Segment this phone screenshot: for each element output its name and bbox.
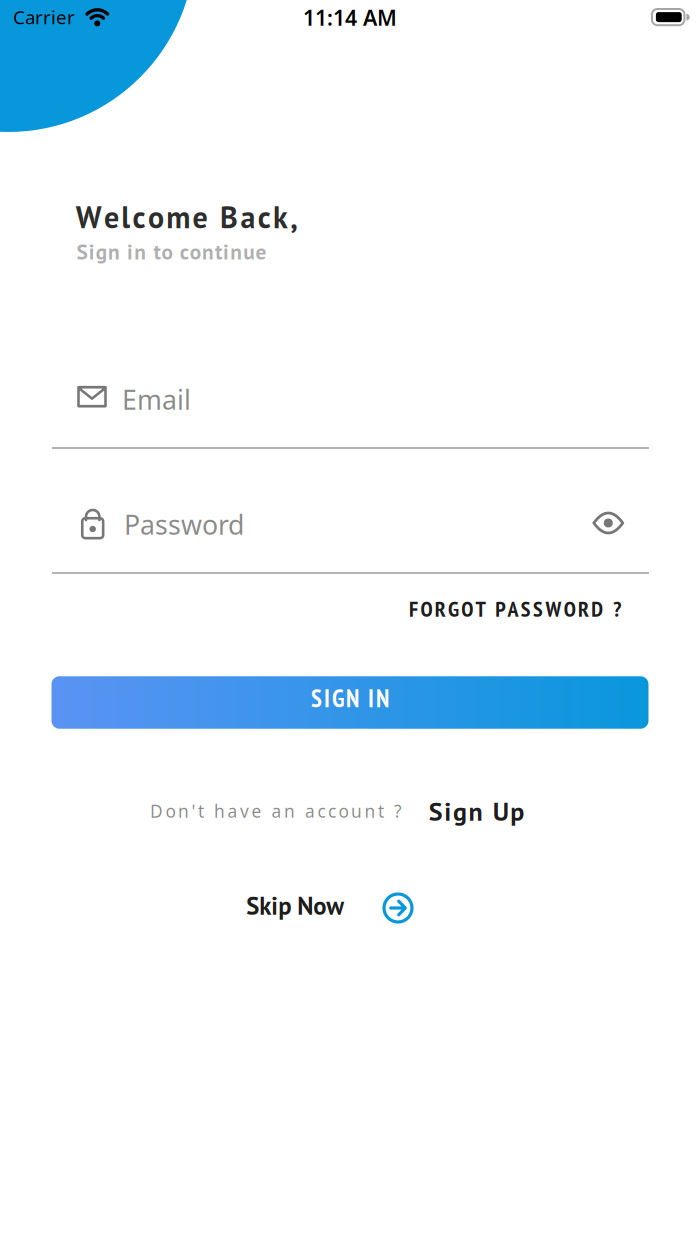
staticText: o: [190, 238, 201, 265]
staticText: R: [578, 594, 589, 623]
staticText: S: [311, 682, 322, 714]
staticText: p: [510, 794, 524, 828]
button[interactable]: S: [51, 676, 648, 729]
staticText: S: [77, 238, 88, 265]
staticText: Carrier: [13, 5, 75, 29]
staticText: n: [178, 799, 189, 822]
staticText: Email: [122, 382, 191, 417]
staticText: c: [328, 799, 336, 822]
staticText: O: [564, 594, 576, 623]
button[interactable]: F: [409, 594, 621, 623]
staticText: t: [215, 238, 222, 265]
staticText: e: [255, 238, 266, 265]
staticText: O: [461, 594, 473, 623]
staticText: t: [378, 799, 384, 822]
staticText: l: [121, 198, 130, 236]
staticText: i: [89, 238, 95, 265]
staticText: T: [476, 594, 486, 623]
staticText: R: [435, 594, 446, 623]
staticText: A: [507, 594, 518, 623]
staticText: e: [192, 198, 207, 236]
button[interactable]: Password: [52, 484, 572, 564]
button[interactable]: Email: [52, 358, 649, 438]
staticText: u: [351, 799, 362, 822]
staticText: t: [198, 799, 204, 822]
staticText: I: [368, 682, 374, 714]
staticText: N: [346, 682, 359, 714]
staticText: ?: [613, 594, 621, 623]
staticText: i: [127, 238, 133, 265]
staticText: W: [545, 594, 561, 623]
staticText: n: [202, 238, 214, 265]
staticText: o: [161, 238, 172, 265]
button[interactable]: Skip Now: [246, 892, 414, 924]
staticText: ,: [290, 198, 298, 236]
staticText: S: [429, 794, 443, 828]
staticText: O: [420, 594, 432, 623]
staticText: G: [448, 594, 459, 623]
staticText: Skip Now: [246, 889, 344, 921]
staticText: n: [108, 238, 120, 265]
staticText: h: [214, 799, 225, 822]
staticText: 11:14 AM: [303, 3, 397, 32]
staticText: t: [153, 238, 160, 265]
staticText: G: [332, 682, 344, 714]
staticText: B: [220, 198, 238, 236]
staticText: N: [376, 682, 389, 714]
staticText: c: [180, 238, 189, 265]
staticText: W: [76, 198, 102, 236]
staticText: F: [409, 594, 418, 623]
staticText: o: [338, 799, 348, 822]
staticText: I: [324, 682, 330, 714]
staticText: g: [96, 238, 107, 265]
button[interactable]: Show password: [591, 510, 625, 536]
staticText: Password: [124, 507, 244, 542]
staticText: n: [284, 799, 295, 822]
staticText: k: [273, 198, 288, 236]
staticText: U: [493, 794, 509, 828]
staticText: n: [468, 794, 482, 828]
staticText: D: [591, 594, 603, 623]
staticText: v: [240, 799, 249, 822]
staticText: c: [258, 198, 271, 236]
staticText: a: [305, 799, 315, 822]
staticText: m: [166, 198, 190, 236]
staticText: c: [133, 198, 146, 236]
staticText: ?: [394, 799, 402, 822]
staticText: u: [243, 238, 254, 265]
staticText: P: [495, 594, 505, 623]
staticText: a: [240, 198, 255, 236]
staticText: i: [223, 238, 229, 265]
staticText: e: [104, 198, 119, 236]
staticText: n: [364, 799, 375, 822]
staticText: n: [230, 238, 242, 265]
staticText: ': [191, 799, 195, 822]
staticText: i: [444, 794, 451, 828]
staticText: D: [150, 799, 163, 822]
staticText: o: [148, 198, 164, 236]
staticText: n: [134, 238, 146, 265]
staticText: S: [533, 594, 543, 623]
staticText: a: [271, 799, 281, 822]
staticText: S: [521, 594, 531, 623]
staticText: a: [227, 799, 237, 822]
staticText: g: [453, 794, 467, 828]
staticText: c: [317, 799, 325, 822]
button[interactable]: S: [429, 794, 524, 828]
staticText: o: [165, 799, 175, 822]
staticText: e: [251, 799, 261, 822]
